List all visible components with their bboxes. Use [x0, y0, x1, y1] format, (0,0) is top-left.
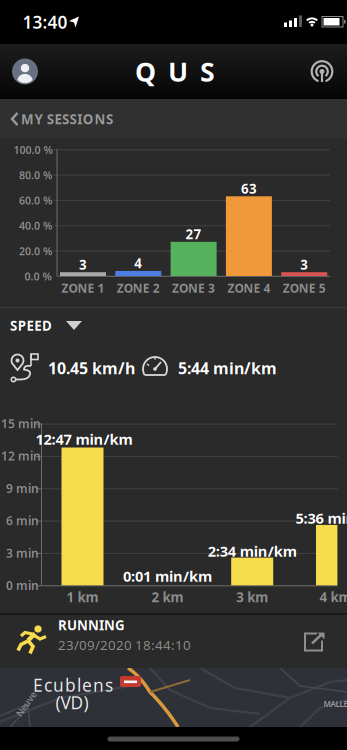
staticText: 3 km: [236, 588, 268, 606]
staticText: 4 km: [319, 588, 347, 606]
staticText: 13:40: [22, 10, 67, 33]
staticText: ZONE 5: [283, 280, 326, 296]
staticText: SPEED: [10, 317, 52, 334]
staticText: Ecublens: [33, 673, 113, 696]
staticText: 40.0 %: [19, 219, 52, 233]
staticText: 63: [241, 180, 257, 197]
staticText: ZONE 2: [117, 280, 160, 296]
staticText: 3 min: [6, 545, 39, 561]
staticText: 2:34 min/km: [208, 541, 297, 561]
button[interactable]: Back to My Sessions: [0, 99, 347, 138]
button[interactable]: Sensors: [310, 60, 334, 83]
staticText: MALLEY: [323, 699, 347, 709]
staticText: 3: [79, 256, 87, 273]
staticText: 3: [300, 256, 308, 273]
staticText: 100.0 %: [13, 143, 52, 157]
staticText: ZONE 1: [61, 280, 104, 296]
button[interactable]: Speed metric selector: [0, 308, 347, 344]
staticText: 0:01 min/km: [123, 566, 212, 586]
staticText: 5:44 min/km: [178, 357, 277, 379]
button[interactable]: Profile: [12, 58, 38, 84]
staticText: 5:36 min/km: [295, 508, 347, 528]
staticText: 12:47 min/km: [35, 429, 132, 449]
staticText: 6 min: [6, 513, 39, 528]
staticText: (VD): [55, 691, 88, 714]
staticText: 12 min: [1, 448, 41, 464]
button[interactable]: Share session: [303, 630, 325, 652]
staticText: ZONE 4: [227, 280, 270, 296]
staticText: 9 min: [6, 480, 39, 496]
staticText: 4: [134, 254, 142, 272]
staticText: 60.0 %: [19, 193, 52, 207]
staticText: RUNNING: [58, 616, 125, 634]
staticText: 1 km: [66, 588, 98, 606]
staticText: 0 min: [6, 577, 39, 593]
staticText: Neuve: [12, 698, 40, 710]
staticText: 27: [186, 225, 202, 243]
staticText: 80.0 %: [19, 168, 52, 182]
staticText: ZONE 3: [172, 280, 215, 296]
staticText: MY SESSIONS: [21, 110, 113, 128]
staticText: 0.0 %: [24, 269, 51, 283]
staticText: QUS: [135, 54, 215, 89]
staticText: 23/09/2020 18:44:10: [58, 636, 191, 654]
button[interactable]: Open session map: [0, 668, 347, 727]
staticText: 20.0 %: [19, 244, 52, 258]
staticText: 10.45 km/h: [48, 357, 135, 379]
staticText: 2 km: [151, 588, 183, 606]
staticText: 15 min: [1, 416, 41, 431]
